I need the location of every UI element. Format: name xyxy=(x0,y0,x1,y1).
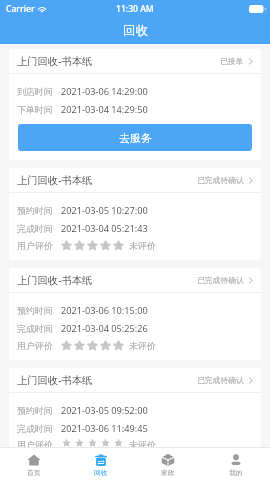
button[interactable]: 家政 xyxy=(134,451,202,477)
staticText: 2021-03-04 14:29:50 xyxy=(61,103,148,116)
staticText: 2021-03-04 05:25:26 xyxy=(61,322,148,335)
staticText: 上门回收-书本纸 xyxy=(17,173,93,187)
staticText: 预约时间 xyxy=(17,405,53,416)
staticText: 已完成待确认 xyxy=(197,175,244,185)
staticText: 完成时间 xyxy=(17,423,53,434)
button[interactable]: 首页 xyxy=(0,451,67,477)
staticText: 完成时间 xyxy=(17,323,53,334)
button[interactable]: 去服务 xyxy=(18,124,252,151)
staticText: 未评价 xyxy=(129,439,156,447)
staticText: 用户评价 xyxy=(17,340,53,351)
staticText: 用户评价 xyxy=(17,439,53,447)
button[interactable]: 上门回收-书本纸 xyxy=(9,49,261,73)
button[interactable]: 上门回收-书本纸 xyxy=(9,268,261,292)
staticText: 2021-03-06 14:29:00 xyxy=(61,85,148,98)
staticText: 首页 xyxy=(27,468,41,477)
staticText: 2021-03-05 09:52:00 xyxy=(61,404,148,417)
staticText: 预约时间 xyxy=(17,305,53,316)
staticText: 未评价 xyxy=(129,340,156,351)
staticText: 完成时间 xyxy=(17,223,53,234)
staticText: 去服务 xyxy=(119,131,152,145)
staticText: 上门回收-书本纸 xyxy=(17,273,93,287)
button[interactable]: 上门回收-书本纸 xyxy=(9,168,261,192)
button[interactable]: 上门回收-书本纸 xyxy=(9,368,261,392)
button[interactable]: 回收 xyxy=(67,451,134,477)
staticText: 我的 xyxy=(229,468,243,477)
staticText: 下单时间 xyxy=(17,104,53,115)
button[interactable]: 我的 xyxy=(202,451,270,477)
staticText: 上门回收-书本纸 xyxy=(17,373,93,387)
staticText: 2021-03-05 10:27:00 xyxy=(61,204,148,217)
staticText: 2021-03-04 05:21:43 xyxy=(61,222,148,235)
staticText: 用户评价 xyxy=(17,240,53,251)
staticText: 已完成待确认 xyxy=(197,275,244,285)
staticText: 回收 xyxy=(94,468,108,477)
staticText: 2021-03-06 10:15:00 xyxy=(61,304,148,317)
staticText: 2021-03-06 11:49:45 xyxy=(61,422,148,435)
staticText: 已接单 xyxy=(220,56,244,66)
staticText: Carrier xyxy=(6,3,35,15)
staticText: 家政 xyxy=(161,468,175,477)
staticText: 已完成待确认 xyxy=(197,375,244,385)
staticText: 回收 xyxy=(123,23,148,39)
staticText: 预约时间 xyxy=(17,205,53,216)
staticText: 上门回收-书本纸 xyxy=(17,54,93,68)
staticText: 未评价 xyxy=(129,240,156,251)
staticText: 到店时间 xyxy=(17,86,53,97)
staticText: 11:30 AM xyxy=(116,3,154,15)
